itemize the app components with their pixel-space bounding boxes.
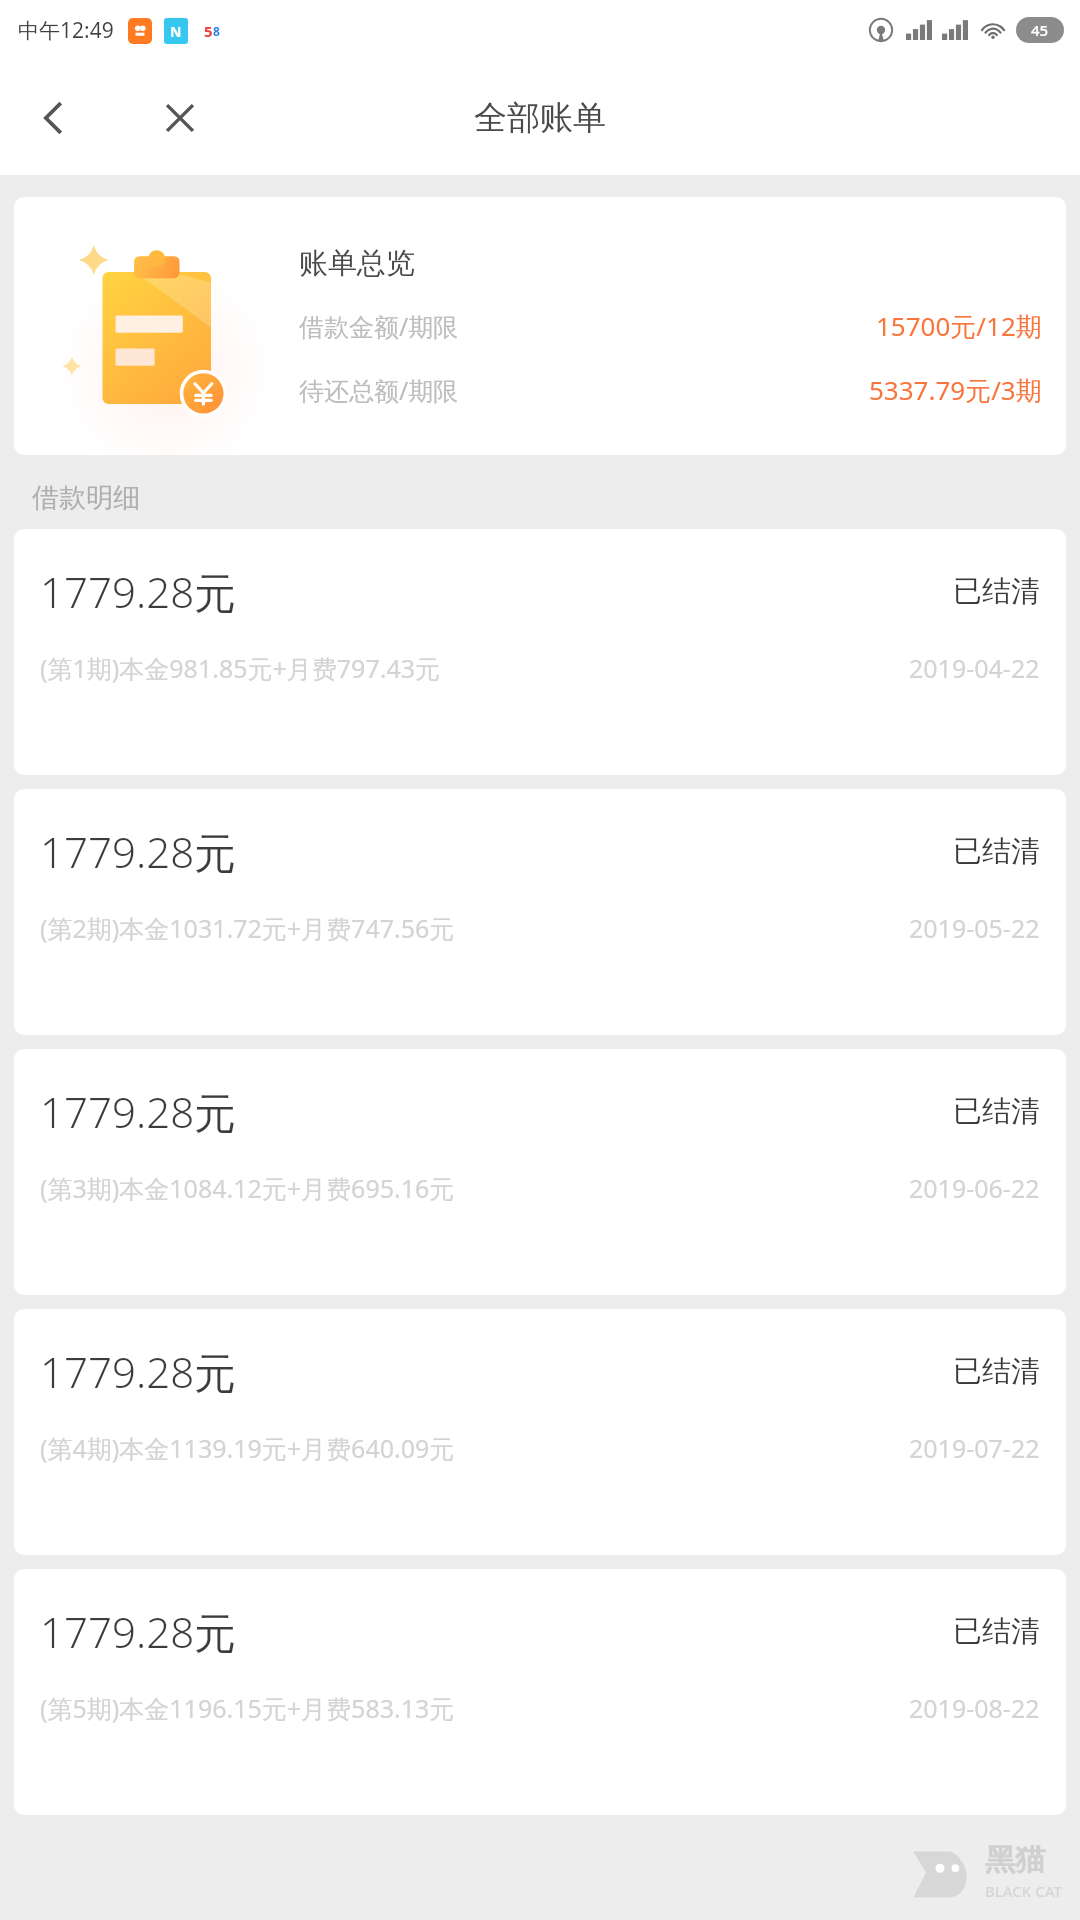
staticText: (第4期)本金1139.19元+月费640.09元 (40, 1431, 455, 1465)
staticText: 账单总览 (299, 245, 415, 282)
staticText: 1779.28元 (40, 1603, 237, 1660)
staticText: 已结清 (953, 1353, 1040, 1390)
staticText: 15700元/12期 (876, 308, 1042, 344)
staticText: 已结清 (953, 573, 1040, 610)
staticText: (第1期)本金981.85元+月费797.43元 (40, 651, 441, 685)
staticText: (第5期)本金1196.15元+月费583.13元 (40, 1691, 455, 1725)
staticText: 5337.79元/3期 (869, 372, 1042, 408)
staticText: 1779.28元 (40, 563, 237, 620)
staticText: 1779.28元 (40, 823, 237, 880)
staticText: 8 (213, 23, 220, 39)
staticText: 待还总额/期限 (299, 373, 459, 407)
staticText: 2019-04-22 (909, 651, 1040, 685)
staticText: 1779.28元 (40, 1083, 237, 1140)
staticText: 中午12:49 (18, 16, 114, 45)
staticText: 借款金额/期限 (299, 309, 459, 343)
staticText: (第3期)本金1084.12元+月费695.16元 (40, 1171, 455, 1205)
staticText: 已结清 (953, 1613, 1040, 1650)
staticText: 45 (1031, 20, 1049, 40)
staticText: 5 (204, 21, 213, 41)
staticText: 1779.28元 (40, 1343, 237, 1400)
button[interactable]: 1779.28元 (14, 1309, 1066, 1555)
button[interactable]: 1779.28元 (14, 1049, 1066, 1295)
staticText: 2019-07-22 (909, 1431, 1040, 1465)
staticText: 2019-08-22 (909, 1691, 1040, 1725)
staticText: 已结清 (953, 833, 1040, 870)
button[interactable]: 1779.28元 (14, 1569, 1066, 1815)
staticText: 借款明细 (32, 481, 140, 515)
staticText: N (170, 22, 182, 41)
button[interactable]: 1779.28元 (14, 789, 1066, 1035)
staticText: 全部账单 (474, 97, 606, 139)
button[interactable]: Close (148, 86, 212, 150)
staticText: BLACK CAT (985, 1881, 1062, 1901)
staticText: 黑猫 (985, 1841, 1045, 1879)
button[interactable]: Back (22, 86, 86, 150)
staticText: 已结清 (953, 1093, 1040, 1130)
button[interactable]: 账单总览 (14, 197, 1066, 455)
button[interactable]: 1779.28元 (14, 529, 1066, 775)
staticText: 2019-06-22 (909, 1171, 1040, 1205)
staticText: (第2期)本金1031.72元+月费747.56元 (40, 911, 455, 945)
staticText: 2019-05-22 (909, 911, 1040, 945)
